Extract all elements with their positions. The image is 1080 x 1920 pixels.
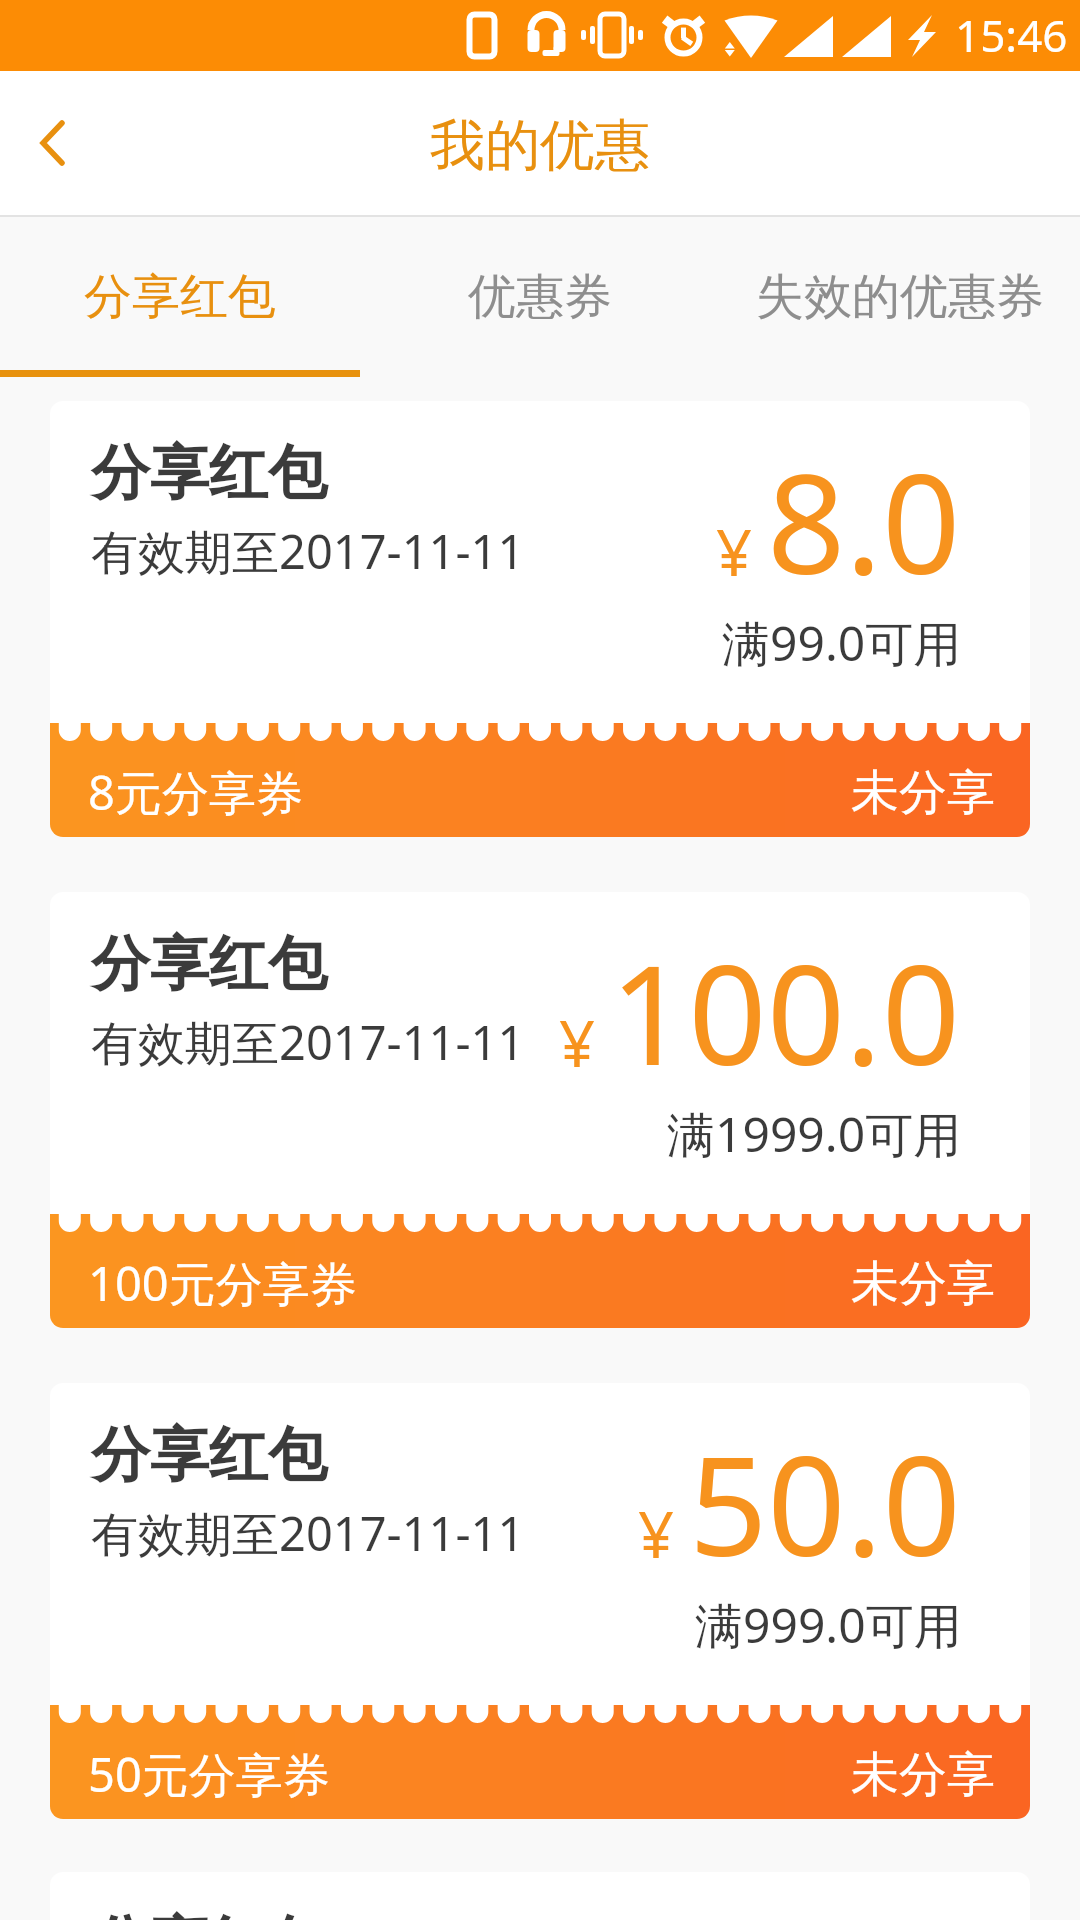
staticText: 分享红包	[91, 1418, 327, 1492]
button[interactable]: 分享红包	[50, 1383, 1030, 1819]
staticText: 分享红包	[84, 267, 276, 327]
staticText: 未分享	[851, 1254, 995, 1314]
staticText: 分享红包	[91, 1907, 327, 1920]
staticText: 未分享	[851, 1745, 995, 1805]
button[interactable]: 未分享	[828, 1739, 1018, 1811]
staticText: ¥	[716, 509, 753, 595]
button[interactable]: 未分享	[828, 1248, 1018, 1320]
button[interactable]: 分享红包	[0, 217, 360, 372]
staticText: 15:46	[955, 5, 1068, 65]
button[interactable]: 分享红包	[50, 1872, 1030, 1920]
staticText: 有效期至2017-11-11	[91, 1501, 525, 1565]
staticText: 8元分享券	[88, 760, 303, 824]
staticText: 有效期至2017-11-11	[91, 1010, 525, 1074]
staticText: 8.0	[767, 428, 961, 615]
staticText: 分享红包	[91, 436, 327, 510]
staticText: 满99.0可用	[722, 610, 962, 676]
staticText: ¥	[559, 1000, 596, 1086]
staticText: 有效期至2017-11-11	[91, 519, 525, 583]
staticText: 50.0	[689, 1410, 961, 1597]
staticText: 满999.0可用	[695, 1592, 962, 1658]
button[interactable]: 未分享	[828, 757, 1018, 829]
staticText: 我的优惠	[430, 111, 650, 180]
button[interactable]: 失效的优惠券	[720, 217, 1080, 372]
staticText: 满1999.0可用	[667, 1101, 962, 1167]
staticText: 100元分享券	[88, 1251, 357, 1315]
staticText: ¥	[638, 1491, 675, 1577]
staticText: 50元分享券	[88, 1742, 330, 1806]
staticText: 失效的优惠券	[756, 267, 1044, 327]
staticText: 优惠券	[468, 267, 612, 327]
button[interactable]: 优惠券	[360, 217, 720, 372]
button[interactable]: 分享红包	[50, 401, 1030, 837]
button[interactable]: 分享红包	[50, 892, 1030, 1328]
staticText: 未分享	[851, 763, 995, 823]
button[interactable]: Back	[0, 91, 104, 195]
staticText: 100.0	[610, 919, 961, 1106]
staticText: 分享红包	[91, 927, 327, 1001]
